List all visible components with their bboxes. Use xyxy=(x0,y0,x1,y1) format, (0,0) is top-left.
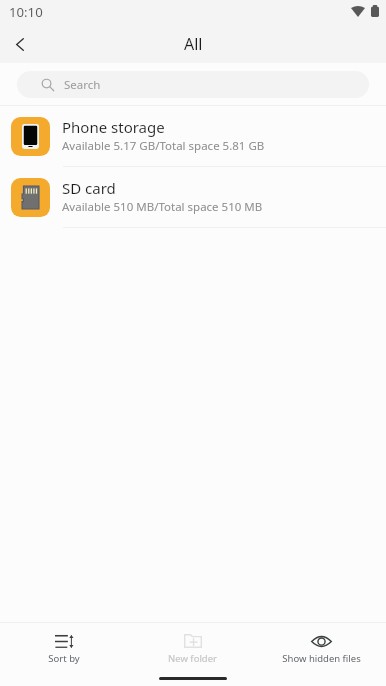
staticText: Phone storage xyxy=(62,117,165,137)
staticText: New folder xyxy=(168,652,217,665)
button[interactable]: Search xyxy=(17,71,369,98)
staticText: Search xyxy=(64,77,101,93)
staticText: All xyxy=(184,33,203,55)
button[interactable]: SD card xyxy=(0,167,386,228)
staticText: SD card xyxy=(62,178,116,198)
staticText: Available 510 MB/Total space 510 MB xyxy=(62,199,263,215)
button[interactable]: Back xyxy=(0,26,40,63)
button[interactable]: Show hidden files xyxy=(257,623,386,669)
staticText: Sort by xyxy=(48,652,80,665)
button[interactable]: Sort by xyxy=(0,623,128,669)
button[interactable]: New folder xyxy=(128,623,257,669)
staticText: Show hidden files xyxy=(282,652,361,665)
staticText: 10:10 xyxy=(9,3,43,21)
button[interactable]: Phone storage xyxy=(0,106,386,167)
staticText: Available 5.17 GB/Total space 5.81 GB xyxy=(62,138,265,154)
